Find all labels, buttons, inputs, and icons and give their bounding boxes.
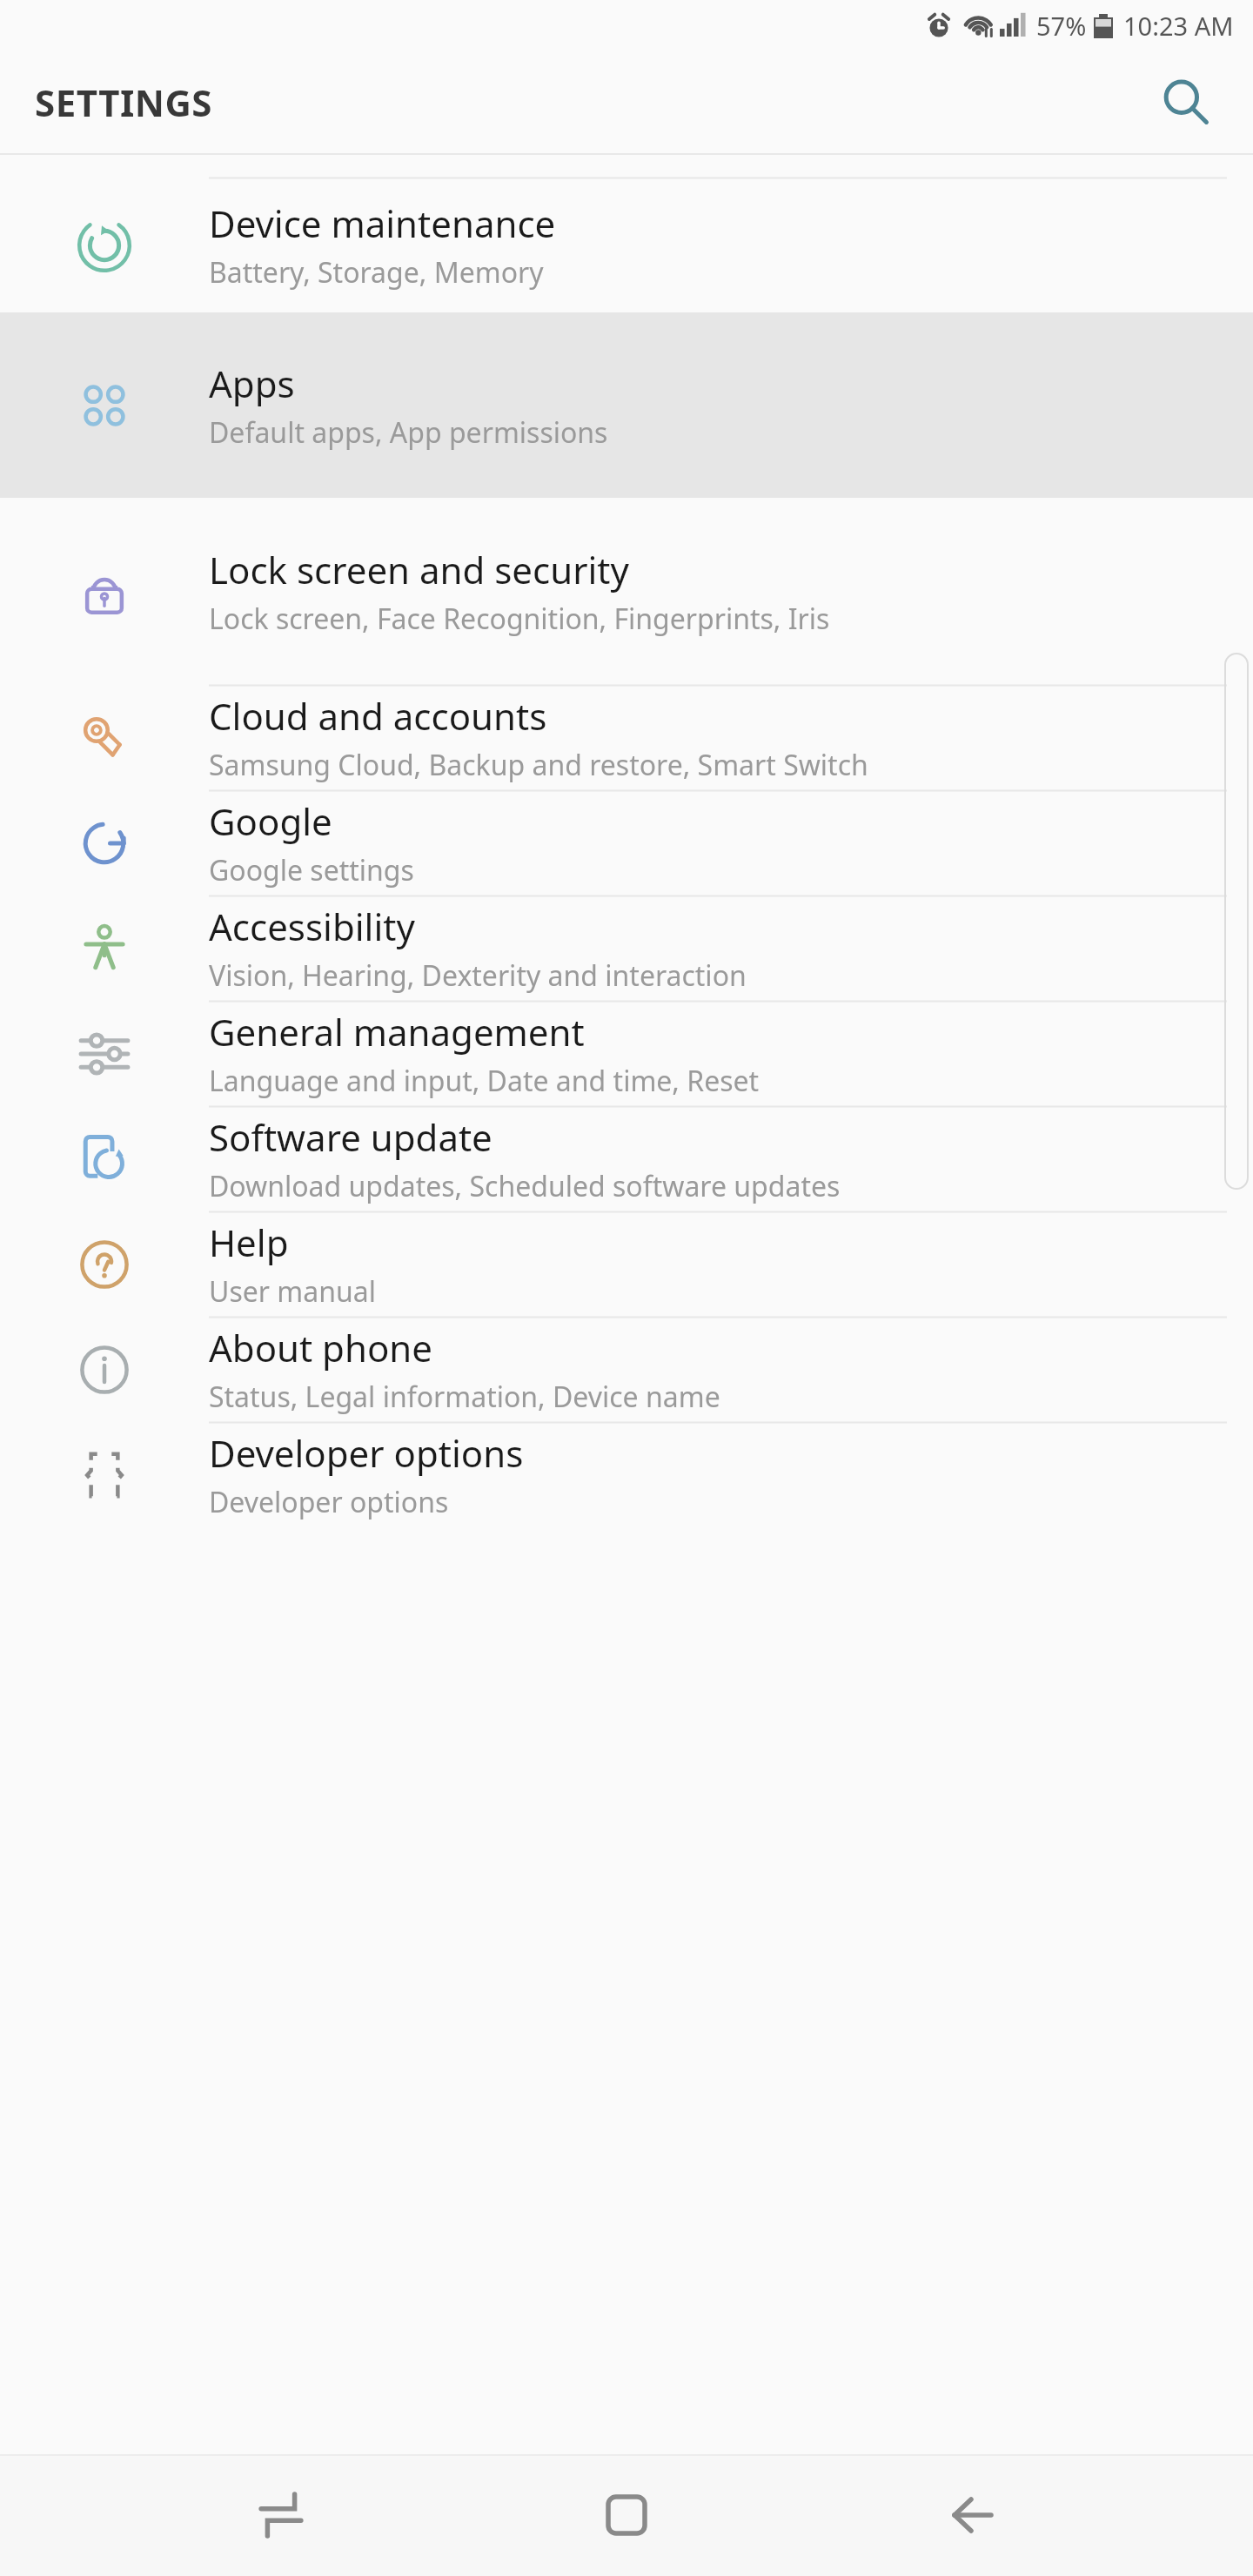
staticText: General management: [209, 1007, 585, 1057]
staticText: Lock screen and security: [209, 545, 629, 594]
staticText: 10:23 AM: [1123, 9, 1234, 43]
button[interactable]: Help: [0, 1211, 1253, 1317]
button[interactable]: General management: [0, 1001, 1253, 1106]
button[interactable]: Recents: [216, 2454, 346, 2576]
button[interactable]: Lock screen and security: [0, 498, 1253, 685]
staticText: 57%: [1036, 9, 1087, 43]
staticText: Cloud and accounts: [209, 691, 547, 741]
staticText: Lock screen, Face Recognition, Fingerpri…: [209, 600, 830, 638]
button[interactable]: Home: [561, 2454, 692, 2576]
staticText: User manual: [209, 1272, 376, 1311]
button[interactable]: Apps: [0, 312, 1253, 498]
staticText: Default apps, App permissions: [209, 413, 608, 452]
button[interactable]: Search: [1143, 60, 1227, 144]
button[interactable]: About phone: [0, 1317, 1253, 1422]
staticText: Vision, Hearing, Dexterity and interacti…: [209, 956, 747, 995]
staticText: Status, Legal information, Device name: [209, 1378, 720, 1416]
button[interactable]: Software update: [0, 1106, 1253, 1211]
staticText: Download updates, Scheduled software upd…: [209, 1167, 841, 1205]
staticText: SETTINGS: [35, 77, 213, 127]
staticText: Samsung Cloud, Backup and restore, Smart…: [209, 746, 868, 784]
button[interactable]: Back: [908, 2454, 1038, 2576]
staticText: Help: [209, 1218, 289, 1267]
staticText: Language and input, Date and time, Reset: [209, 1062, 760, 1100]
staticText: Developer options: [209, 1483, 449, 1521]
staticText: Battery, Storage, Memory: [209, 253, 544, 292]
staticText: About phone: [209, 1323, 432, 1372]
button[interactable]: Developer options: [0, 1422, 1253, 1527]
staticText: Developer options: [209, 1428, 524, 1478]
staticText: Apps: [209, 359, 295, 408]
button[interactable]: Device maintenance: [0, 178, 1253, 312]
button[interactable]: Google: [0, 790, 1253, 896]
staticText: Software update: [209, 1112, 492, 1162]
button[interactable]: Cloud and accounts: [0, 685, 1253, 790]
staticText: Google: [209, 796, 332, 846]
staticText: Device maintenance: [209, 198, 556, 248]
staticText: Accessibility: [209, 902, 415, 951]
button[interactable]: Accessibility: [0, 896, 1253, 1001]
staticText: Google settings: [209, 851, 414, 889]
